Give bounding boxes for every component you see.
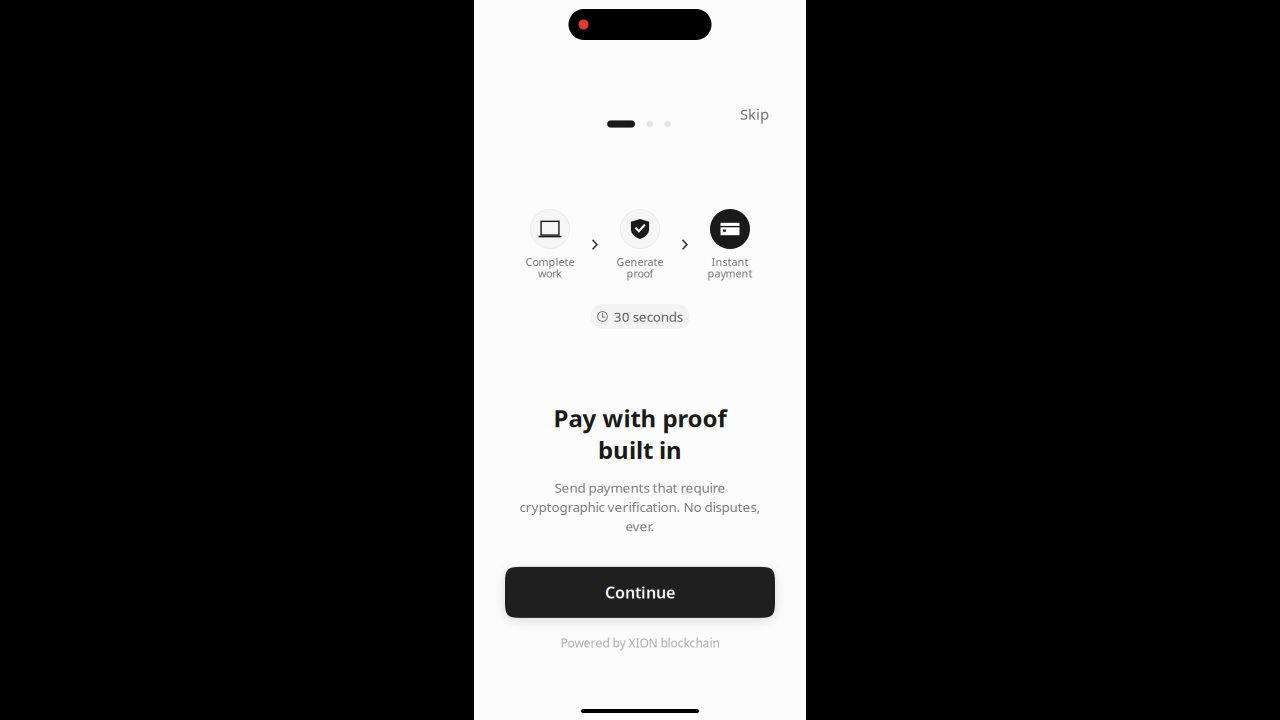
staticText: Continue [605,582,675,603]
staticText: built in [598,434,682,466]
button[interactable]: Skip [730,98,779,130]
staticText: cryptographic verification. No disputes, [519,498,760,516]
staticText: Complete [525,255,574,269]
staticText: Generate [616,255,663,269]
button[interactable]: Continue [505,567,775,618]
staticText: ever. [625,517,654,535]
staticText: proof [626,266,653,280]
staticText: payment [707,266,752,280]
staticText: Pay with proof [553,402,726,434]
button[interactable]: Page 1 of 3 [607,120,671,128]
staticText: work [538,266,562,280]
staticText: Skip [740,104,769,124]
staticText: Powered by XION blockchain [560,635,719,651]
staticText: 30 seconds [614,308,683,325]
staticText: Instant [711,255,748,269]
staticText: Send payments that require [554,479,725,496]
